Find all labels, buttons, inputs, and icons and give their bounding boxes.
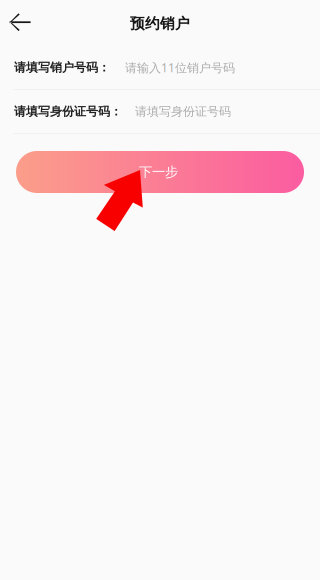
staticText: 请填写身份证号码	[135, 104, 231, 119]
button[interactable]: 请填写身份证号码：	[0, 90, 320, 133]
staticText: 请输入11位销户号码	[125, 59, 235, 75]
staticText: 预约销户	[130, 14, 190, 32]
button[interactable]: Back	[0, 0, 44, 44]
staticText: 请填写销户号码：	[14, 60, 110, 75]
staticText: 下一步	[139, 164, 178, 180]
button[interactable]: 请填写销户号码：	[0, 46, 320, 89]
button[interactable]: 下一步	[0, 151, 320, 193]
staticText: 请填写身份证号码：	[14, 104, 122, 119]
